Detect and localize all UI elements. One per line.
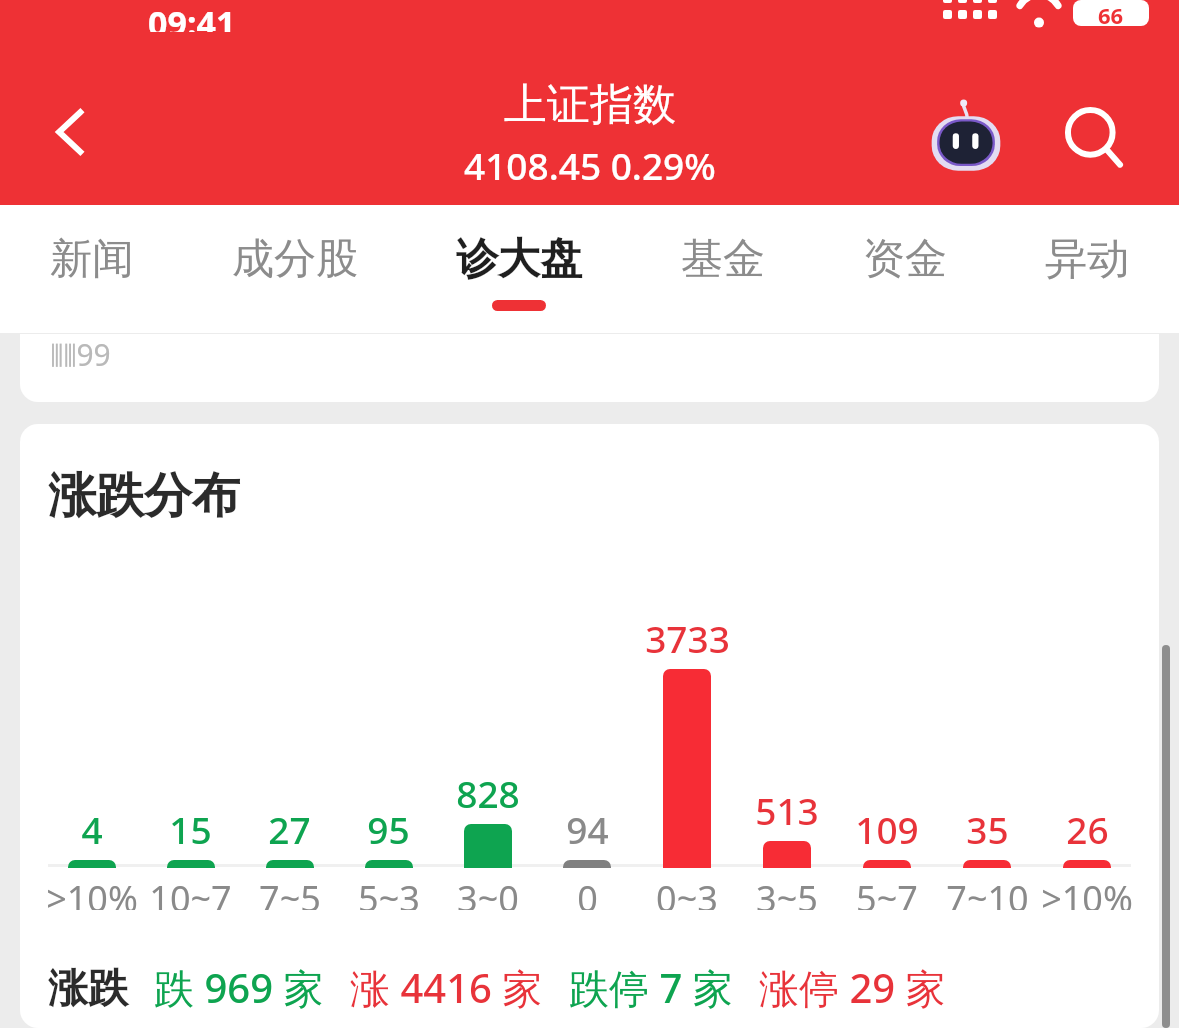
staticText: 涨跌分布 [48,466,240,526]
button[interactable]: 95 [339,564,438,910]
staticText: 94 [566,804,609,854]
staticText: 5~3 [358,874,420,910]
staticText: 0~3 [656,874,718,910]
staticText: 7~5 [259,874,321,910]
staticText: 资金 [863,233,947,286]
staticText: >10% [1041,874,1133,910]
button[interactable]: 513 [737,564,837,910]
staticText: 4 [81,804,103,854]
staticText: ⦀⦀99 [50,334,111,375]
staticText: 跌停 7 家 [569,960,733,1015]
button[interactable]: 新闻 [46,205,138,333]
button[interactable]: 4 [42,564,141,910]
button[interactable]: 109 [837,564,937,910]
staticText: 27 [268,804,311,854]
staticText: 诊大盘 [456,233,582,286]
button[interactable]: 828 [438,564,537,910]
staticText: 基金 [681,233,765,286]
button[interactable]: 基金 [677,205,769,333]
staticText: 上证指数 [504,78,676,132]
staticText: 新闻 [50,233,134,286]
staticText: 109 [855,804,919,854]
button[interactable]: 94 [537,564,637,910]
button[interactable]: 成分股 [228,205,362,333]
staticText: 66 [1098,0,1124,26]
staticText: 成分股 [232,233,358,286]
staticText: 09:41 [148,0,236,32]
staticText: 513 [755,785,819,835]
staticText: 3~0 [457,874,519,910]
staticText: 涨 4416 家 [350,960,543,1015]
button[interactable]: AI assistant [920,92,1012,184]
staticText: 35 [966,804,1009,854]
staticText: 95 [367,804,410,854]
button[interactable]: 15 [141,564,240,910]
staticText: 10~7 [149,874,232,910]
button[interactable]: 3733 [637,564,737,910]
staticText: 15 [169,804,212,854]
button[interactable]: 异动 [1041,205,1133,333]
staticText: 828 [456,768,520,818]
button[interactable]: 26 [1037,564,1137,910]
button[interactable]: 诊大盘 [452,205,586,333]
staticText: 7~10 [946,874,1029,910]
button[interactable]: 35 [937,564,1037,910]
staticText: >10% [46,874,138,910]
staticText: 跌 969 家 [154,960,324,1015]
staticText: 涨跌 [48,963,128,1013]
staticText: 4108.45 0.29% [464,140,716,190]
button[interactable]: 27 [240,564,339,910]
staticText: 涨停 29 家 [759,960,946,1015]
button[interactable]: 资金 [859,205,951,333]
staticText: 3733 [645,613,730,663]
staticText: 0 [577,874,598,910]
staticText: 5~7 [856,874,918,910]
button[interactable]: Search [1048,92,1140,184]
staticText: 异动 [1045,233,1129,286]
staticText: 26 [1066,804,1109,854]
staticText: 3~5 [756,874,818,910]
button[interactable]: Back [32,92,112,172]
